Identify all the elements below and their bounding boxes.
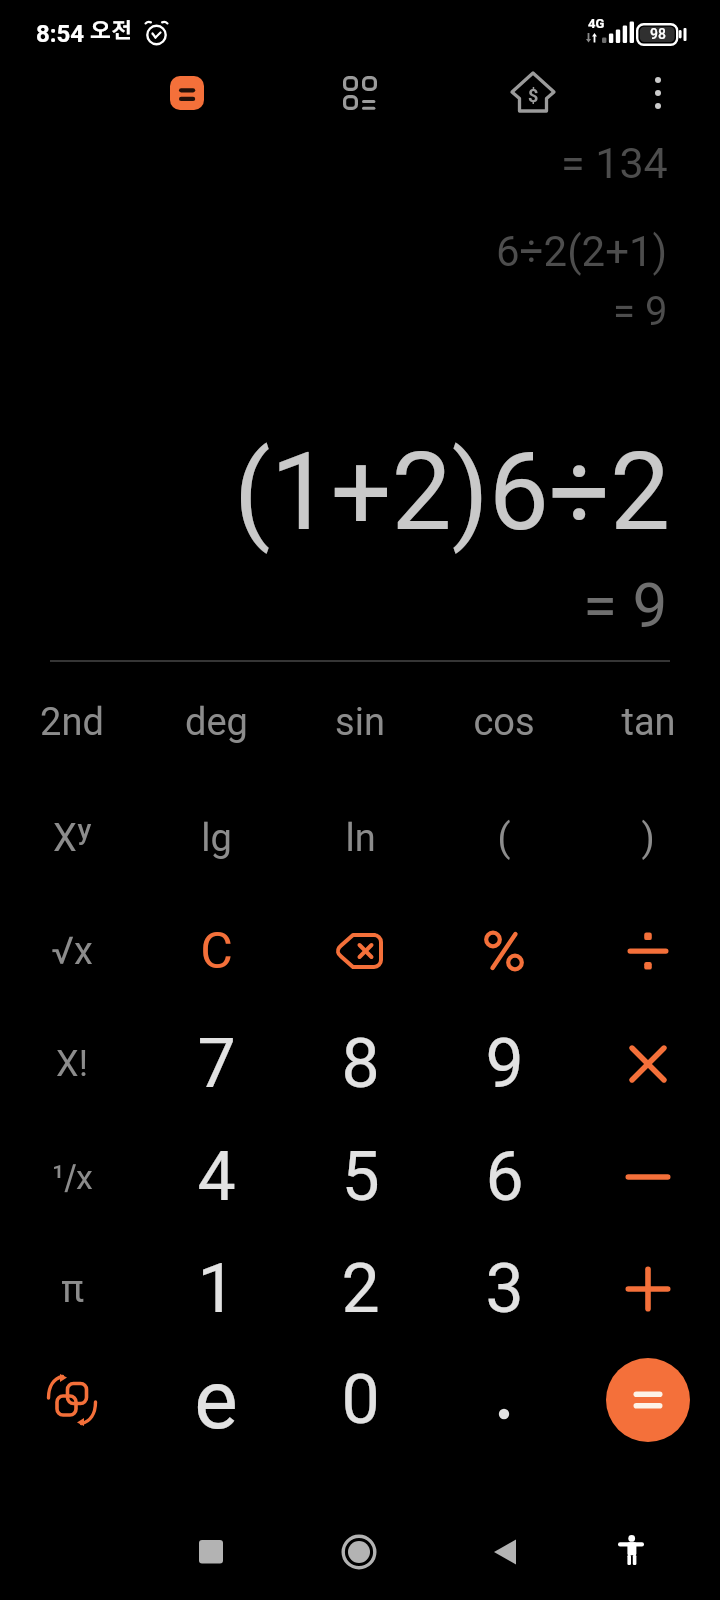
button[interactable]: X! xyxy=(2,1010,142,1118)
staticText: ) xyxy=(641,816,655,861)
button[interactable]: cos xyxy=(434,668,574,776)
staticText: 오전 xyxy=(90,21,132,42)
button[interactable]: tan xyxy=(578,668,718,776)
button[interactable] xyxy=(2,1346,142,1454)
button[interactable] xyxy=(578,1123,718,1231)
staticText: (1+2)6÷2 xyxy=(234,430,671,555)
button[interactable] xyxy=(596,1348,700,1452)
staticText: 6 xyxy=(485,1137,524,1217)
staticText: $ xyxy=(528,85,539,106)
button[interactable]: 9 xyxy=(434,1010,574,1118)
staticText: 6÷2(2+1) xyxy=(496,227,668,276)
staticText: 2nd xyxy=(40,700,104,745)
button[interactable]: Xʸ xyxy=(2,784,142,892)
staticText: ( xyxy=(497,816,511,861)
button[interactable] xyxy=(460,1507,550,1597)
button[interactable]: deg xyxy=(146,668,286,776)
staticText: ¹∕x xyxy=(52,1157,93,1197)
button[interactable]: ln xyxy=(290,784,430,892)
button[interactable]: 0 xyxy=(290,1346,430,1454)
staticText: = 134 xyxy=(561,138,668,188)
staticText: 9 xyxy=(485,1024,524,1104)
button[interactable] xyxy=(434,897,574,1005)
staticText: tan xyxy=(621,700,676,745)
button[interactable] xyxy=(166,1507,256,1597)
staticText: lg xyxy=(201,816,232,861)
button[interactable]: 3 xyxy=(434,1235,574,1343)
staticText: sin xyxy=(335,700,385,745)
button[interactable]: $ xyxy=(503,62,563,122)
staticText: 7 xyxy=(197,1024,236,1104)
button[interactable] xyxy=(434,1346,574,1454)
staticText: deg xyxy=(185,700,248,745)
button[interactable] xyxy=(632,63,684,123)
button[interactable]: √x xyxy=(2,897,142,1005)
staticText: e xyxy=(194,1352,238,1448)
button[interactable] xyxy=(578,1010,718,1118)
button[interactable]: 1 xyxy=(146,1235,286,1343)
button[interactable]: 2nd xyxy=(2,668,142,776)
button[interactable]: 8 xyxy=(290,1010,430,1118)
staticText: π xyxy=(61,1267,84,1312)
staticText: 4G xyxy=(588,16,605,31)
button[interactable] xyxy=(157,63,217,123)
staticText: = 9 xyxy=(583,569,668,642)
staticText: 2 xyxy=(341,1249,380,1329)
staticText: 8:54 xyxy=(36,20,85,48)
staticText: 3 xyxy=(485,1249,524,1329)
staticText: = 9 xyxy=(613,288,668,335)
staticText: C xyxy=(200,922,233,981)
button[interactable] xyxy=(36,0,236,68)
staticText: Xʸ xyxy=(53,816,92,861)
staticText: X! xyxy=(56,1043,88,1085)
staticText: 98 xyxy=(650,26,666,42)
button[interactable] xyxy=(578,897,718,1005)
button[interactable]: 7 xyxy=(146,1010,286,1118)
button[interactable]: lg xyxy=(146,784,286,892)
button[interactable]: 5 xyxy=(290,1123,430,1231)
button[interactable] xyxy=(586,1505,676,1595)
staticText: 4 xyxy=(197,1137,236,1217)
staticText: ln xyxy=(345,816,376,861)
button[interactable] xyxy=(330,63,390,123)
button[interactable]: e xyxy=(146,1346,286,1454)
button[interactable]: ( xyxy=(434,784,574,892)
button[interactable]: 4 xyxy=(146,1123,286,1231)
button[interactable]: ¹∕x xyxy=(2,1123,142,1231)
staticText: 0 xyxy=(341,1360,380,1440)
button[interactable]: C xyxy=(146,897,286,1005)
button[interactable]: sin xyxy=(290,668,430,776)
button[interactable] xyxy=(314,1507,404,1597)
button[interactable] xyxy=(578,1235,718,1343)
button[interactable]: ) xyxy=(578,784,718,892)
button[interactable]: 2 xyxy=(290,1235,430,1343)
button[interactable]: 6 xyxy=(434,1123,574,1231)
staticText: 5 xyxy=(341,1137,380,1217)
button[interactable]: π xyxy=(2,1235,142,1343)
staticText: √x xyxy=(51,929,93,974)
button[interactable] xyxy=(290,897,430,1005)
staticText: 1 xyxy=(197,1249,236,1329)
staticText: 8 xyxy=(341,1024,380,1104)
staticText: cos xyxy=(473,700,535,745)
